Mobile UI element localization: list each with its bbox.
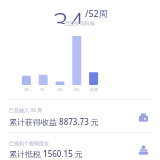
staticText: 31 bbox=[40, 87, 45, 92]
button[interactable]: 已抵扣个税额度金 bbox=[0, 140, 160, 159]
staticText: 33 bbox=[74, 87, 79, 92]
button[interactable]: 累计抵税 bbox=[135, 142, 151, 158]
staticText: 本周 bbox=[90, 87, 98, 92]
button[interactable]: 已投融入 36 周 bbox=[0, 107, 160, 127]
staticText: 已投融入 36 周 bbox=[9, 107, 43, 114]
staticText: 32 bbox=[57, 87, 62, 92]
staticText: 累计获得收益 8873.73 元 bbox=[9, 116, 99, 127]
staticText: 已坚持与目标 bbox=[65, 20, 95, 26]
staticText: 30 bbox=[24, 87, 29, 92]
staticText: 34 bbox=[53, 4, 84, 24]
staticText: 累计抵税 1560.15 元 bbox=[9, 148, 83, 159]
button[interactable]: 累计获得收益 bbox=[135, 109, 151, 125]
staticText: /52周 bbox=[85, 7, 108, 19]
staticText: 已抵扣个税额度金 bbox=[9, 140, 49, 146]
